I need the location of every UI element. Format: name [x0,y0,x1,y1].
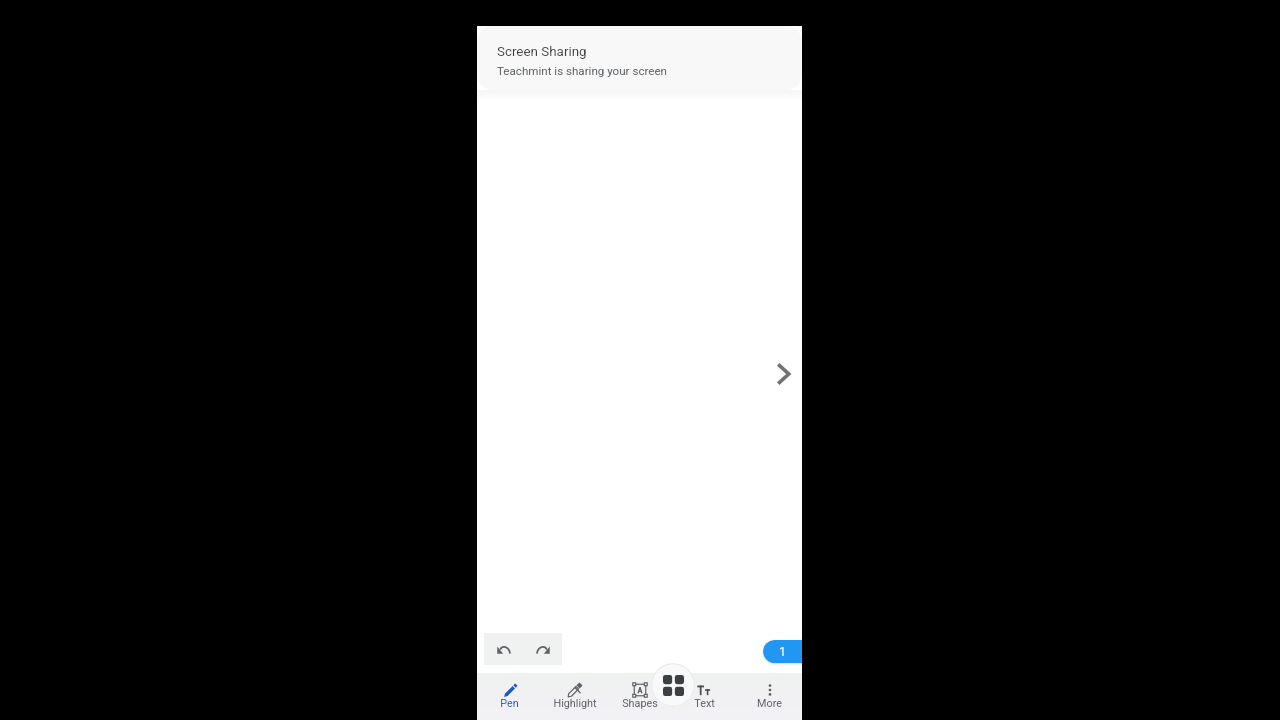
staticText: More [757,697,782,710]
staticText: Highlight [553,697,597,710]
button[interactable]: Text [672,673,737,720]
button[interactable]: Redo [524,633,562,665]
button[interactable]: Highlight [542,673,607,720]
staticText: Teachmint is sharing your screen [497,64,667,78]
staticText: 1 [779,644,787,659]
button[interactable]: Undo [484,633,524,665]
button[interactable]: Shapes [607,673,672,720]
button[interactable]: Next page [765,356,801,392]
button[interactable]: 1 [763,640,802,663]
button[interactable]: More [737,673,802,720]
staticText: Screen Sharing [497,44,587,60]
button[interactable]: Pen [477,673,542,720]
button[interactable]: Screen Sharing [477,26,802,90]
staticText: Text [694,697,715,710]
staticText: Pen [500,697,519,710]
staticText: Shapes [622,697,658,710]
button[interactable]: All tools [651,663,695,707]
